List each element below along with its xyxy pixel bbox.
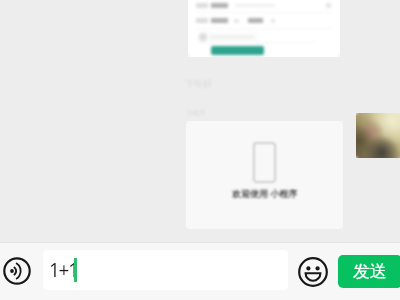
button[interactable]: 发送	[338, 255, 400, 288]
staticText: 欢迎使用 小程序	[232, 187, 298, 199]
staticText: 发送	[353, 261, 387, 282]
button[interactable]	[188, 0, 340, 57]
button[interactable]: Voice input	[1, 255, 33, 287]
button[interactable]: 欢迎使用 小程序	[186, 121, 343, 229]
button[interactable]: Emoji	[297, 256, 329, 288]
button[interactable]: 1+1	[43, 250, 288, 290]
staticText: 1+1	[49, 257, 78, 283]
